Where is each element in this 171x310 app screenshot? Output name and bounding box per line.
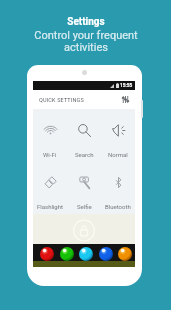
staticText: Settings (67, 16, 105, 28)
button[interactable] (99, 247, 113, 261)
staticText: Search (75, 151, 94, 158)
staticText: Selfie (77, 203, 92, 210)
staticText: Flashlight (37, 203, 63, 210)
button[interactable] (118, 247, 132, 261)
button[interactable]: Search (67, 109, 101, 161)
staticText: Bluetooth (105, 203, 131, 210)
button[interactable]: Wi-Fi (33, 109, 67, 161)
button[interactable]: Flashlight (33, 161, 67, 214)
staticText: Normal (108, 151, 128, 158)
staticText: Wi-Fi (43, 151, 57, 158)
button[interactable]: Selfie (67, 161, 101, 214)
button[interactable]: Settings sliders (121, 95, 130, 104)
staticText: QUICK SETTINGS (39, 97, 84, 103)
button[interactable]: Normal (101, 109, 135, 161)
button[interactable]: Bluetooth (101, 161, 135, 214)
staticText: 15:55 (120, 83, 133, 89)
button[interactable] (60, 247, 74, 261)
button[interactable] (79, 247, 93, 261)
staticText: Control your frequent activities (34, 29, 138, 54)
button[interactable] (40, 247, 54, 261)
